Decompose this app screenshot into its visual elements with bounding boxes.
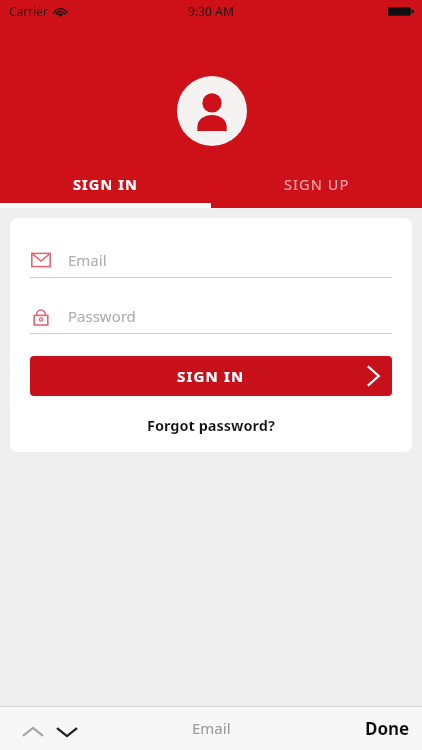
staticText: SIGN IN xyxy=(73,174,138,194)
button[interactable]: Done xyxy=(365,717,410,740)
button[interactable]: Next field xyxy=(51,716,83,748)
button[interactable]: SIGN UP xyxy=(211,160,422,208)
staticText: Carrier xyxy=(9,3,49,19)
button[interactable]: Forgot password? xyxy=(10,412,412,438)
staticText: 9:30 AM xyxy=(188,3,234,19)
staticText: Email xyxy=(68,250,107,270)
button[interactable]: Email xyxy=(30,242,392,278)
button[interactable]: SIGN IN xyxy=(0,160,211,208)
staticText: SIGN IN xyxy=(177,366,245,386)
staticText: Email xyxy=(192,718,231,738)
staticText: Forgot password? xyxy=(147,415,275,435)
button[interactable]: SIGN IN xyxy=(30,356,392,396)
staticText: Done xyxy=(365,717,410,740)
button[interactable]: Previous field xyxy=(17,716,49,748)
button[interactable]: Password xyxy=(30,298,392,334)
staticText: SIGN UP xyxy=(284,174,350,194)
staticText: Password xyxy=(68,306,136,326)
